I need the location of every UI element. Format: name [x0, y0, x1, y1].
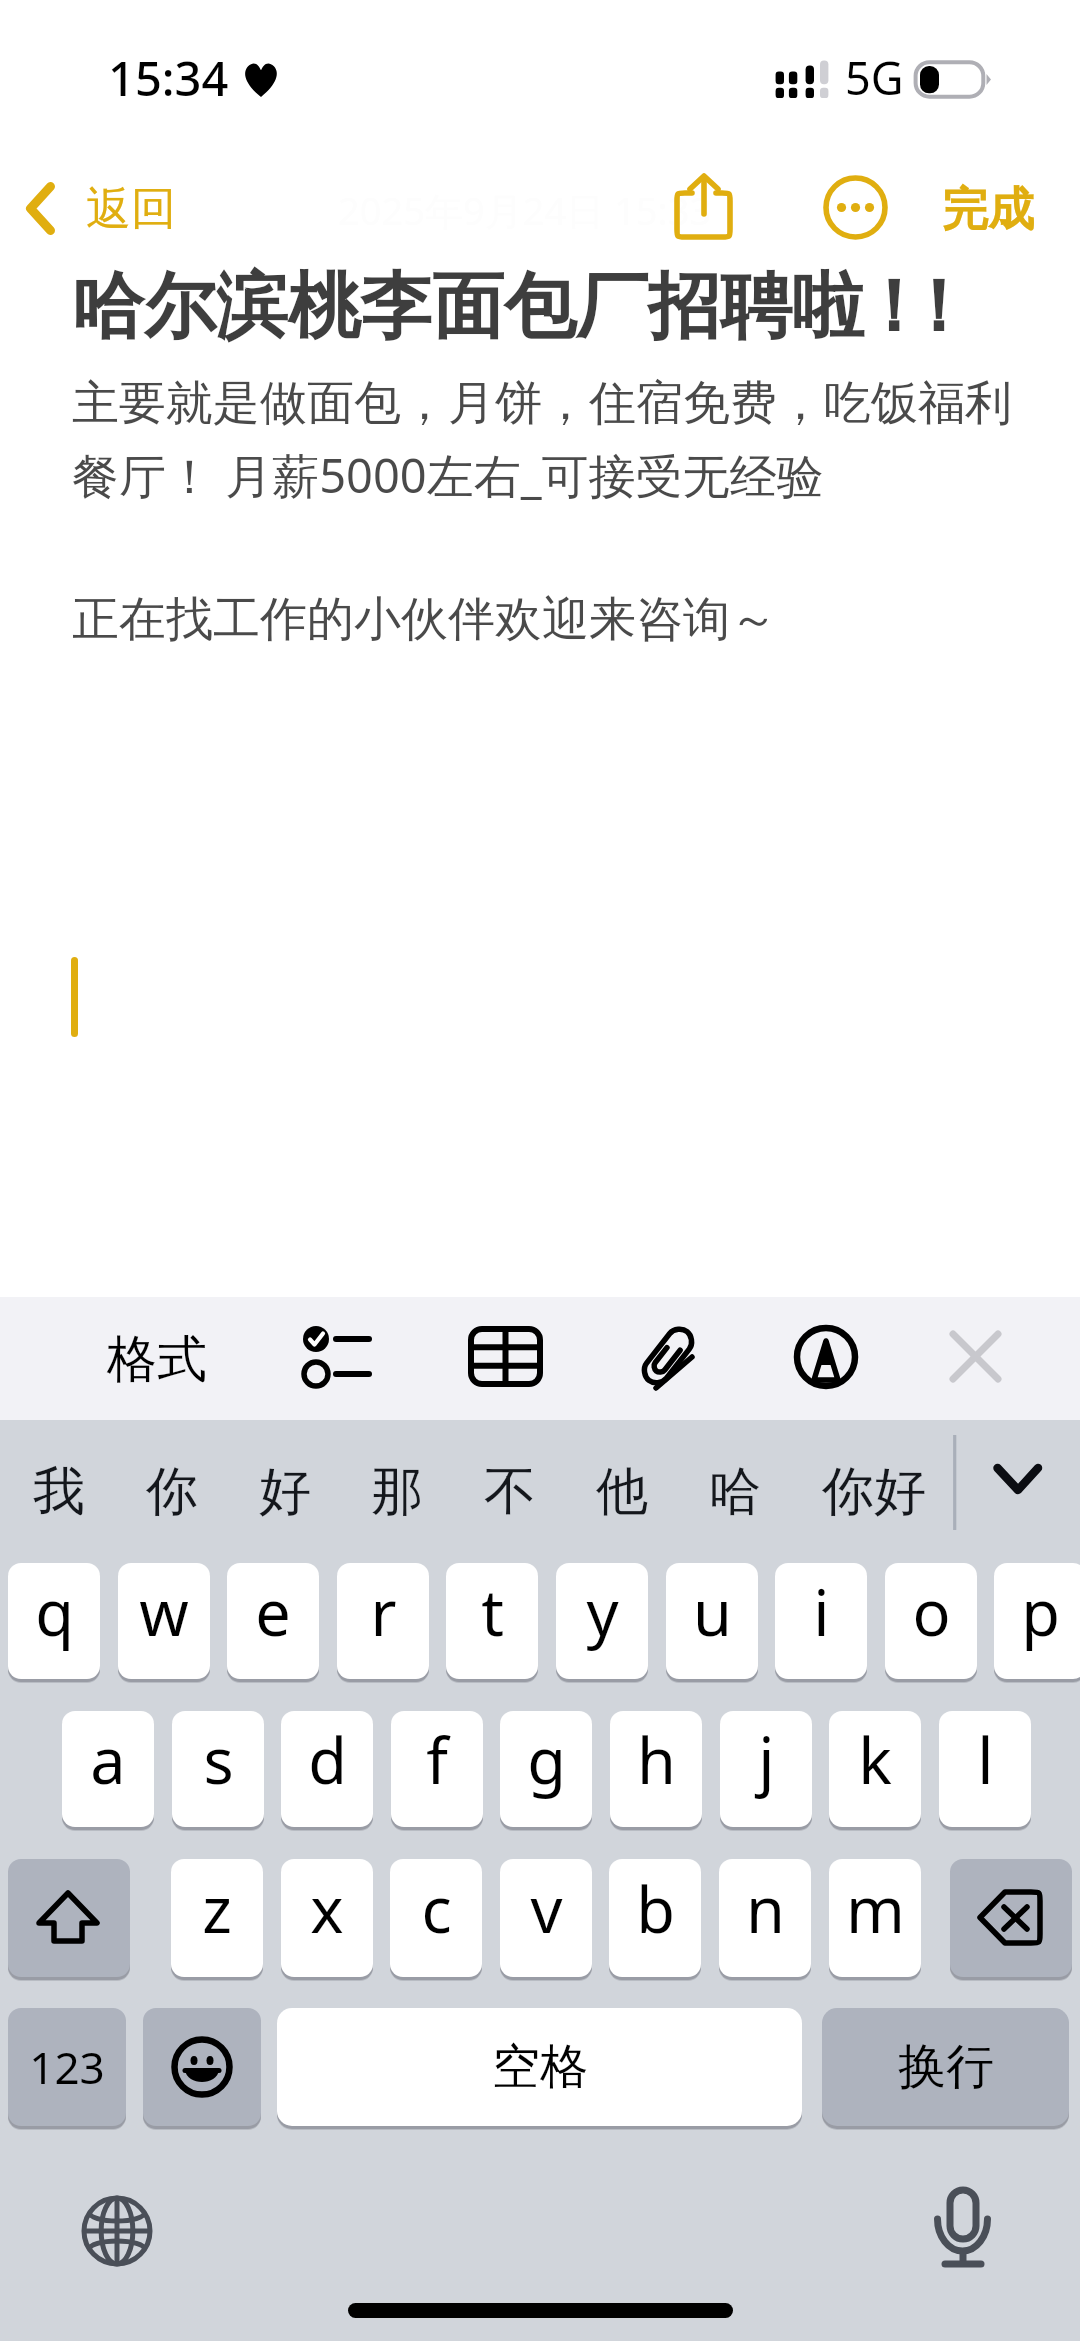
staticText: 你	[146, 1459, 198, 1525]
staticText: x	[310, 1866, 344, 1952]
button[interactable]: 好	[259, 1432, 311, 1552]
staticText: t	[481, 1569, 504, 1655]
staticText: 空格	[492, 2037, 588, 2097]
staticText: q	[35, 1569, 74, 1655]
staticText: c	[421, 1866, 452, 1952]
staticText: 好	[259, 1459, 311, 1525]
staticText: 主要就是做面包，月饼，住宿免费，吃饭福利 餐厅！ 月薪5000左右_可接受无经验…	[72, 374, 1072, 649]
button[interactable]: s	[172, 1711, 264, 1827]
button[interactable]: 我	[33, 1432, 85, 1552]
staticText: f	[426, 1717, 448, 1803]
button[interactable]: 返回	[10, 160, 190, 256]
button[interactable]: Checklist	[288, 1311, 384, 1407]
button[interactable]: e	[227, 1563, 319, 1679]
staticText: 完成	[942, 181, 1034, 239]
staticText: 返回	[86, 181, 176, 238]
button[interactable]: 哈	[709, 1432, 761, 1552]
staticText: 哈尔滨桃李面包厂招聘啦	[72, 262, 864, 353]
staticText: s	[203, 1717, 234, 1803]
button[interactable]: 那	[371, 1432, 423, 1552]
button[interactable]: n	[719, 1859, 811, 1977]
staticText: e	[255, 1569, 291, 1655]
button[interactable]: Emoji	[143, 2008, 261, 2126]
staticText: a	[90, 1717, 126, 1803]
staticText: w	[139, 1569, 189, 1655]
button[interactable]: More	[818, 170, 893, 245]
button[interactable]: Switch keyboard	[81, 2195, 153, 2267]
staticText: o	[912, 1569, 951, 1655]
button[interactable]: v	[500, 1859, 592, 1977]
button[interactable]: w	[118, 1563, 210, 1679]
button[interactable]: 换行	[822, 2008, 1069, 2126]
staticText: k	[858, 1717, 892, 1803]
staticText: ！！	[857, 262, 947, 353]
button[interactable]: l	[939, 1711, 1031, 1827]
button[interactable]: d	[281, 1711, 373, 1827]
button[interactable]: t	[446, 1563, 538, 1679]
staticText: 123	[29, 2037, 105, 2097]
staticText: y	[586, 1569, 619, 1655]
staticText: v	[530, 1866, 563, 1952]
staticText: b	[636, 1866, 675, 1952]
button[interactable]: 123	[8, 2008, 126, 2126]
button[interactable]: k	[829, 1711, 921, 1827]
button[interactable]: 他	[596, 1432, 648, 1552]
button[interactable]: 格式	[96, 1311, 218, 1407]
button[interactable]: 完成	[924, 160, 1052, 256]
staticText: h	[637, 1717, 676, 1803]
staticText: 5G	[845, 47, 904, 108]
staticText: d	[308, 1717, 347, 1803]
staticText: r	[370, 1569, 397, 1655]
staticText: 15:34	[108, 46, 229, 110]
button[interactable]: f	[391, 1711, 483, 1827]
staticText: j	[758, 1717, 775, 1803]
button[interactable]: u	[666, 1563, 758, 1679]
staticText: 哈	[709, 1459, 761, 1525]
button[interactable]: x	[281, 1859, 373, 1977]
staticText: 格式	[107, 1328, 207, 1391]
button[interactable]: Share	[660, 155, 750, 255]
staticText: 换行	[898, 2037, 994, 2097]
button[interactable]: o	[885, 1563, 977, 1679]
button[interactable]: b	[609, 1859, 701, 1977]
staticText: i	[813, 1569, 830, 1655]
button[interactable]: Backspace	[950, 1859, 1072, 1977]
button[interactable]: p	[994, 1563, 1080, 1679]
button[interactable]: Dictation	[930, 2185, 1000, 2295]
staticText: 你好	[822, 1459, 926, 1525]
button[interactable]: c	[390, 1859, 482, 1977]
button[interactable]: Table	[459, 1311, 553, 1407]
button[interactable]: 你好	[822, 1432, 926, 1552]
button[interactable]: h	[610, 1711, 702, 1827]
button[interactable]: a	[62, 1711, 154, 1827]
button[interactable]: Close	[940, 1311, 1012, 1407]
staticText: u	[693, 1569, 732, 1655]
staticText: 他	[596, 1459, 648, 1525]
button[interactable]: 空格	[277, 2008, 802, 2126]
button[interactable]: 不	[484, 1432, 536, 1552]
staticText: g	[527, 1717, 566, 1803]
staticText: m	[846, 1866, 905, 1952]
button[interactable]: q	[8, 1563, 100, 1679]
button[interactable]: r	[337, 1563, 429, 1679]
staticText: 2025年9月24日 15:33	[338, 184, 712, 236]
button[interactable]: Collapse candidates	[985, 1452, 1051, 1506]
button[interactable]: m	[829, 1859, 921, 1977]
button[interactable]: Shift	[8, 1859, 130, 1977]
staticText: 那	[371, 1459, 423, 1525]
button[interactable]: g	[500, 1711, 592, 1827]
staticText: z	[202, 1866, 232, 1952]
staticText: 我	[33, 1459, 85, 1525]
button[interactable]: Attach	[628, 1311, 708, 1407]
staticText: 不	[484, 1459, 536, 1525]
staticText: p	[1021, 1569, 1060, 1655]
staticText: n	[746, 1866, 785, 1952]
button[interactable]: j	[720, 1711, 812, 1827]
button[interactable]: 你	[146, 1432, 198, 1552]
staticText: l	[977, 1717, 994, 1803]
button[interactable]: i	[775, 1563, 867, 1679]
button[interactable]: z	[171, 1859, 263, 1977]
button[interactable]: y	[556, 1563, 648, 1679]
button[interactable]: Markup	[790, 1311, 866, 1407]
